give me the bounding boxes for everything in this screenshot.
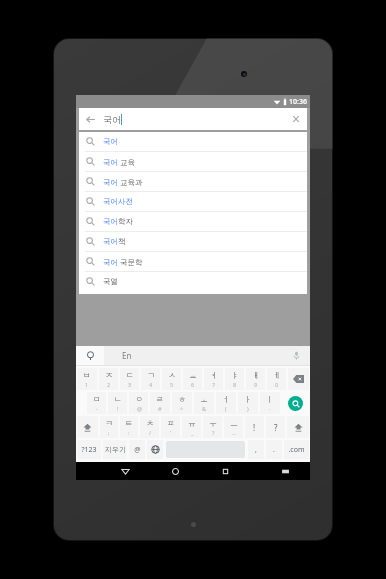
button[interactable]: .com (284, 440, 309, 459)
staticText: ㅔ (273, 370, 281, 380)
staticText: & (202, 405, 207, 412)
button[interactable]: ㅑ (225, 368, 244, 390)
button[interactable]: Search (282, 392, 309, 414)
button[interactable]: Backspace (288, 368, 309, 390)
staticText: ㅇ (135, 394, 143, 404)
staticText: 국어 (103, 237, 118, 246)
staticText: ㄴ (114, 394, 122, 404)
button[interactable]: ㅛ (183, 368, 202, 390)
staticText: ㅅ (168, 370, 176, 380)
button[interactable]: ㅌ (120, 416, 138, 438)
button[interactable]: Clear (291, 114, 301, 124)
button[interactable]: ㅂ (77, 368, 97, 390)
button[interactable]: 국어 (79, 152, 307, 171)
staticText: ㅓ (222, 394, 230, 404)
button[interactable]: Back (85, 114, 96, 125)
button[interactable]: ㅋ (100, 416, 118, 438)
button[interactable]: ㅓ (216, 392, 236, 414)
button[interactable]: Back (79, 108, 307, 130)
staticText: 학자 (118, 217, 133, 226)
staticText: ㅊ (146, 418, 154, 428)
staticText: ㅏ (244, 394, 252, 404)
button[interactable]: ㅜ (203, 416, 222, 438)
staticText: 6 (191, 381, 195, 388)
staticText: ! (117, 405, 119, 412)
staticText: 7 (212, 381, 216, 388)
button[interactable]: 국어 (79, 252, 307, 271)
staticText: ㅛ (189, 370, 197, 380)
button[interactable]: @ (129, 440, 145, 459)
staticText: 국어 (103, 114, 121, 125)
button[interactable]: ㅐ (246, 368, 265, 390)
staticText: ? (212, 429, 215, 436)
button[interactable]: ㅅ (162, 368, 181, 390)
button[interactable]: ㅍ (161, 416, 180, 438)
staticText: .com (288, 445, 305, 455)
staticText: ㅐ (252, 370, 260, 380)
staticText: @ (134, 445, 141, 455)
staticText: 교육과 (118, 177, 143, 187)
button[interactable]: 국어 (79, 172, 307, 191)
button[interactable]: 국어 (79, 212, 307, 231)
staticText: ^ (180, 405, 184, 412)
button[interactable]: ㅣ (260, 392, 280, 414)
staticText: 10:36 (289, 97, 307, 107)
staticText: ( (225, 405, 227, 412)
staticText: : (128, 429, 130, 436)
button[interactable]: Input method (76, 346, 104, 365)
staticText: 8 (233, 381, 237, 388)
button[interactable]: ㅁ (87, 392, 106, 414)
staticText: ㅌ (125, 418, 133, 428)
button[interactable]: ㅗ (194, 392, 214, 414)
button[interactable]: 지우기 (103, 440, 127, 459)
button[interactable]: ㅠ (182, 416, 201, 438)
button[interactable]: ㅕ (204, 368, 223, 390)
staticText: 책 (118, 237, 126, 246)
button[interactable]: 국어사전 (79, 192, 307, 211)
button[interactable]: Change language (147, 440, 163, 459)
button[interactable]: ㄱ (141, 368, 160, 390)
staticText: ㅕ (210, 370, 218, 380)
button[interactable]: Keyboard (276, 462, 294, 480)
button[interactable]: ㄹ (150, 392, 170, 414)
button[interactable]: . (266, 440, 282, 459)
button[interactable]: Recents (216, 462, 234, 480)
button[interactable]: ㄷ (120, 368, 139, 390)
button[interactable]: 국어 (79, 232, 307, 251)
button[interactable]: En (104, 346, 282, 365)
button[interactable]: Home (166, 462, 184, 480)
button[interactable]: ㅏ (238, 392, 258, 414)
staticText: 국어 (103, 258, 118, 267)
staticText: _ (191, 429, 194, 436)
button[interactable]: ? (266, 416, 285, 438)
button[interactable]: ㅊ (140, 416, 159, 438)
staticText: ㅡ (230, 418, 238, 428)
button[interactable]: ㅈ (99, 368, 118, 390)
button[interactable]: ㅎ (172, 392, 192, 414)
staticText: / (149, 429, 152, 436)
staticText: ㅋ (105, 418, 113, 428)
staticText: ㅑ (231, 370, 239, 380)
button[interactable]: ㅇ (129, 392, 148, 414)
button[interactable]: ㄴ (108, 392, 127, 414)
button[interactable]: Voice input (282, 346, 310, 365)
button[interactable]: Shift (287, 416, 309, 438)
button[interactable]: 국어 (79, 132, 307, 151)
button[interactable]: , (248, 440, 264, 459)
staticText: ㅂ (83, 370, 91, 380)
staticText: 국어 (103, 217, 118, 226)
button[interactable]: ㅔ (267, 368, 286, 390)
staticText: 5 (170, 381, 174, 388)
staticText: - (96, 405, 98, 412)
staticText: ? (274, 422, 278, 433)
staticText: ) (247, 405, 249, 412)
button[interactable]: ㅡ (224, 416, 243, 438)
button[interactable]: Back (116, 462, 134, 480)
staticText: 국어 (103, 178, 118, 187)
button[interactable]: 국열 (79, 272, 307, 291)
button[interactable]: ! (245, 416, 264, 438)
button[interactable]: Shift (77, 416, 98, 438)
button[interactable]: ?123 (77, 440, 101, 459)
staticText: ㅗ (200, 394, 208, 404)
